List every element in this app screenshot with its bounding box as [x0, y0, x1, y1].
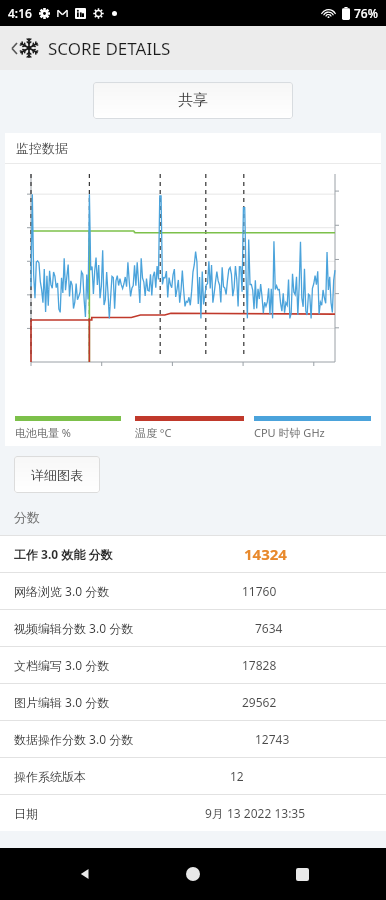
button[interactable]: 详细图表 [14, 456, 100, 493]
button[interactable]: Back [8, 31, 42, 65]
staticText: 文档编写 3.0 分数 [14, 657, 110, 673]
staticText: 17828 [242, 657, 277, 673]
staticText: 11760 [242, 583, 277, 599]
staticText: SCORE DETAILS [48, 37, 171, 60]
button[interactable]: 操作系统版本 [0, 758, 386, 794]
staticText: CPU 时钟 GHz [254, 425, 371, 440]
staticText: 日期 [14, 806, 38, 821]
button[interactable]: 视频编辑分数 3.0 分数 [0, 610, 386, 646]
staticText: 9月 13 2022 13:35 [205, 805, 306, 821]
staticText: 数据操作分数 3.0 分数 [14, 731, 134, 747]
staticText: 监控数据 [16, 140, 68, 156]
button[interactable]: 共享 [93, 82, 293, 119]
staticText: 视频编辑分数 3.0 分数 [14, 620, 134, 636]
staticText: 分数 [14, 509, 40, 525]
staticText: 29562 [242, 694, 277, 710]
staticText: 共享 [178, 91, 208, 110]
staticText: 14324 [244, 544, 287, 564]
staticText: 76% [354, 5, 378, 21]
staticText: 电池电量 % [15, 425, 127, 440]
staticText: 操作系统版本 [14, 769, 86, 784]
button[interactable]: Home [169, 850, 217, 898]
button[interactable]: 工作 3.0 效能 分数 [0, 536, 386, 572]
staticText: 工作 3.0 效能 分数 [14, 546, 113, 562]
button[interactable]: Back [61, 850, 109, 898]
staticText: 4:16 [8, 5, 32, 21]
staticText: 12 [230, 768, 244, 784]
button[interactable]: 图片编辑 3.0 分数 [0, 684, 386, 720]
staticText: 12743 [255, 731, 290, 747]
staticText: 图片编辑 3.0 分数 [14, 694, 110, 710]
staticText: 详细图表 [31, 467, 83, 483]
button[interactable]: 日期 [0, 795, 386, 831]
button[interactable]: 文档编写 3.0 分数 [0, 647, 386, 683]
button[interactable]: Recents [278, 850, 326, 898]
staticText: 温度 °C [135, 425, 246, 440]
button[interactable]: 数据操作分数 3.0 分数 [0, 721, 386, 757]
staticText: 网络浏览 3.0 分数 [14, 583, 110, 599]
button[interactable]: 网络浏览 3.0 分数 [0, 573, 386, 609]
staticText: 7634 [255, 620, 283, 636]
